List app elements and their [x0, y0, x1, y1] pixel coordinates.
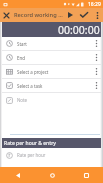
- button[interactable]: More options: [91, 8, 103, 22]
- button[interactable]: Start timer: [64, 8, 77, 22]
- button[interactable]: Recent apps: [69, 167, 103, 183]
- staticText: Select a task: [17, 83, 43, 89]
- button[interactable]: Select a project: [2, 65, 101, 78]
- button[interactable]: Row options: [91, 79, 101, 92]
- button[interactable]: Back: [0, 167, 35, 183]
- button[interactable]: Save: [77, 8, 91, 22]
- button[interactable]: Row options: [91, 37, 101, 50]
- button[interactable]: Close: [0, 8, 12, 22]
- staticText: Record working ...: [14, 11, 63, 19]
- staticText: End: [17, 55, 25, 61]
- staticText: Rate per hour & entry: [4, 140, 56, 147]
- staticText: Note: [17, 97, 28, 103]
- button[interactable]: Note: [2, 93, 101, 107]
- button[interactable]: Row options: [91, 51, 101, 64]
- button[interactable]: Rate per hour: [2, 148, 101, 162]
- staticText: Rate per hour: [17, 152, 46, 158]
- staticText: 16:29: [88, 1, 101, 8]
- staticText: 00:00:00: [58, 23, 100, 37]
- button[interactable]: Select a task: [2, 79, 101, 92]
- button[interactable]: Row options: [91, 65, 101, 78]
- button[interactable]: End: [2, 51, 101, 64]
- button[interactable]: Start: [2, 37, 101, 50]
- staticText: Select a project: [17, 69, 49, 75]
- staticText: Start: [17, 41, 27, 47]
- button[interactable]: Home: [35, 167, 69, 183]
